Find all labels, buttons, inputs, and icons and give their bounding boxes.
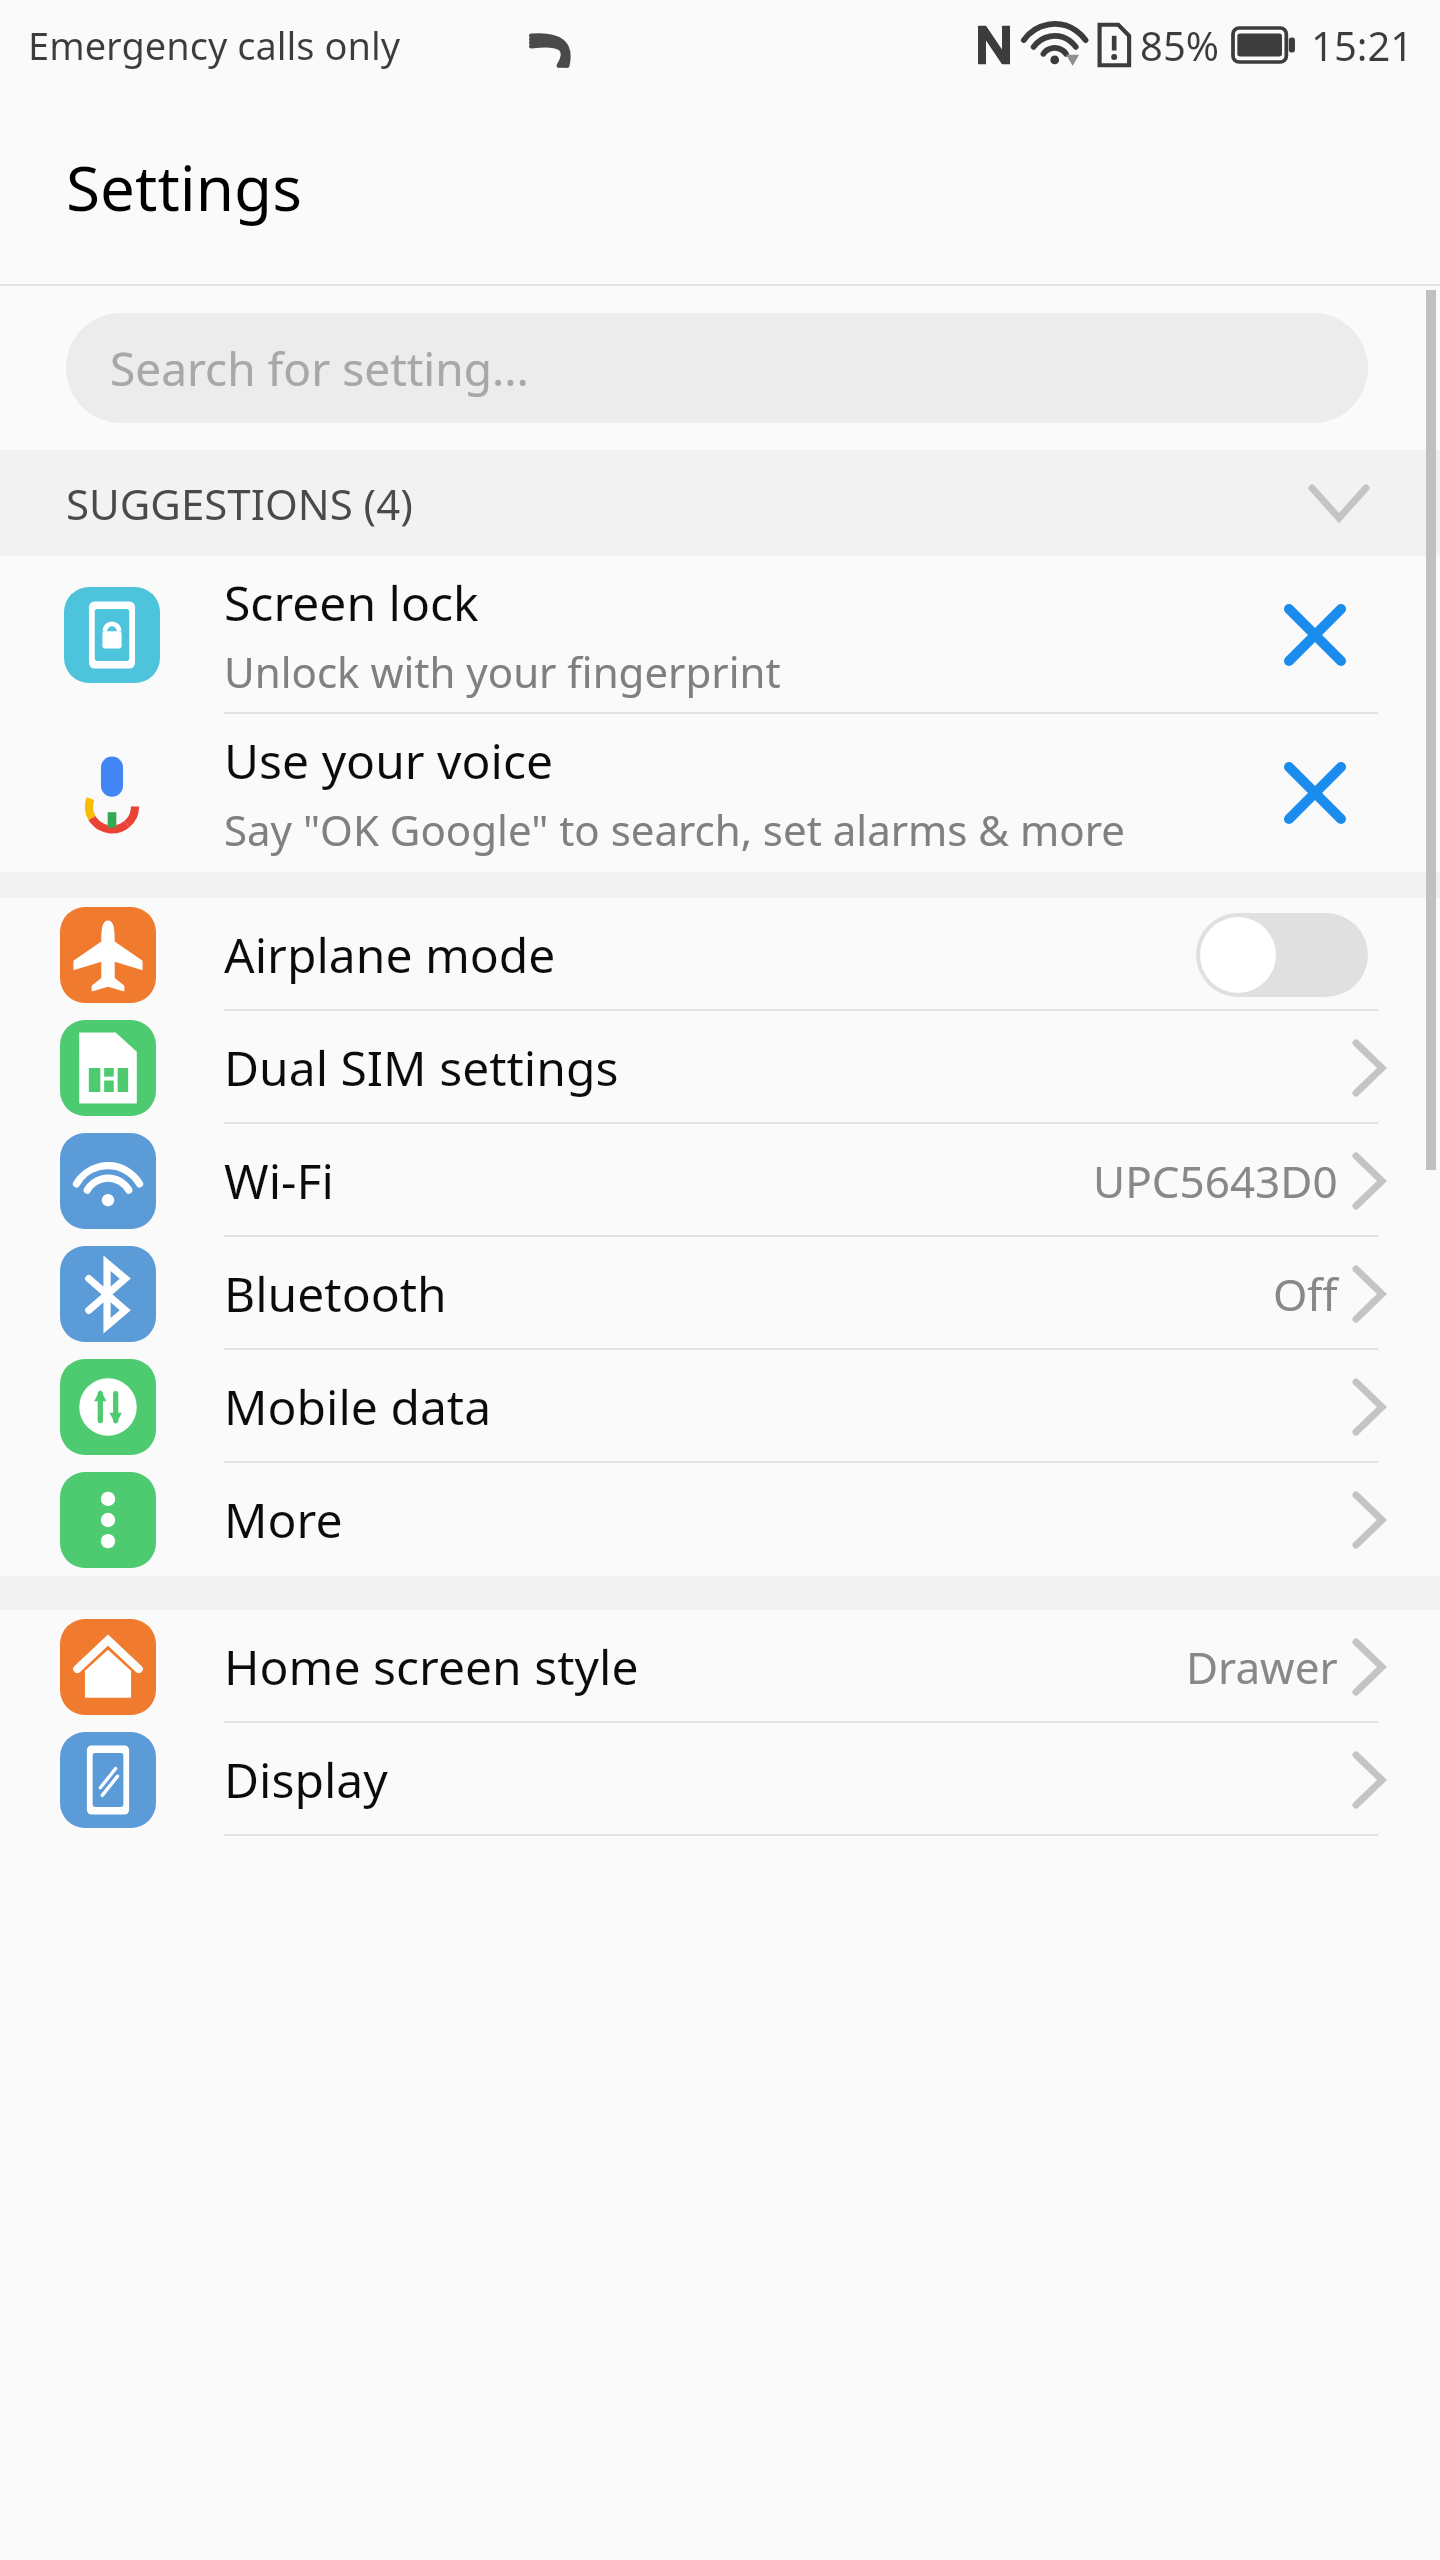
- staticText: Use your voice: [224, 728, 554, 793]
- button[interactable]: Airplane mode: [0, 898, 1440, 1011]
- staticText: 15:21: [1311, 18, 1414, 72]
- staticText: Unlock with your fingerprint: [224, 643, 781, 700]
- staticText: UPC5643D0: [1093, 1151, 1338, 1211]
- staticText: Mobile data: [224, 1374, 492, 1439]
- staticText: More: [224, 1487, 343, 1552]
- staticText: SUGGESTIONS (4): [66, 475, 413, 532]
- staticText: Screen lock: [224, 570, 479, 635]
- button[interactable]: Airplane mode toggle: [1196, 913, 1368, 997]
- staticText: Settings: [66, 145, 302, 229]
- button[interactable]: Wi-Fi: [0, 1124, 1440, 1237]
- staticText: Bluetooth: [224, 1261, 447, 1326]
- button[interactable]: SUGGESTIONS (4): [0, 450, 1440, 556]
- button[interactable]: Dismiss Screen lock: [1270, 590, 1360, 680]
- staticText: 85%: [1140, 18, 1219, 72]
- button[interactable]: Dismiss Use your voice: [1270, 748, 1360, 838]
- button[interactable]: Screen lock: [0, 556, 1440, 714]
- button[interactable]: Home screen style: [0, 1610, 1440, 1723]
- button[interactable]: More: [0, 1463, 1440, 1576]
- button[interactable]: Search for setting...: [66, 313, 1368, 423]
- button[interactable]: Mobile data: [0, 1350, 1440, 1463]
- staticText: Dual SIM settings: [224, 1035, 619, 1100]
- staticText: Search for setting...: [110, 337, 529, 400]
- button[interactable]: Dual SIM settings: [0, 1011, 1440, 1124]
- staticText: Home screen style: [224, 1634, 639, 1699]
- staticText: Drawer: [1186, 1637, 1338, 1697]
- staticText: Airplane mode: [224, 922, 556, 987]
- button[interactable]: Bluetooth: [0, 1237, 1440, 1350]
- button[interactable]: Display: [0, 1723, 1440, 1836]
- staticText: Off: [1273, 1264, 1338, 1324]
- button[interactable]: Use your voice: [0, 714, 1440, 872]
- staticText: Emergency calls only: [28, 19, 401, 71]
- staticText: Say "OK Google" to search, set alarms & …: [224, 801, 1125, 858]
- staticText: Wi-Fi: [224, 1148, 334, 1213]
- staticText: Display: [224, 1747, 388, 1812]
